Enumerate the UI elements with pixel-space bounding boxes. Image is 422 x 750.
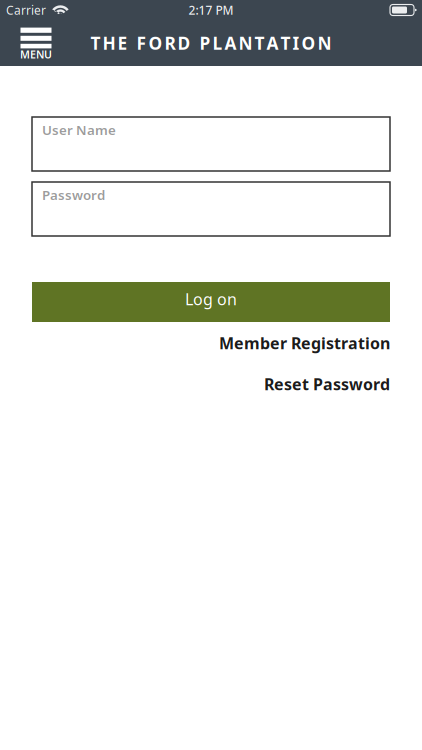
button[interactable]: Log on bbox=[32, 282, 390, 322]
staticText: Password bbox=[42, 186, 105, 204]
staticText: Member Registration bbox=[219, 332, 390, 354]
button[interactable]: Menu bbox=[14, 20, 58, 66]
staticText: User Name bbox=[42, 121, 116, 139]
staticText: 2:17 PM bbox=[188, 2, 233, 18]
staticText: Reset Password bbox=[264, 373, 390, 395]
button[interactable]: Reset Password bbox=[32, 369, 390, 399]
staticText: T H E F O R D P L A N T A T I O N bbox=[90, 31, 331, 54]
staticText: Carrier bbox=[6, 2, 46, 18]
staticText: MENU bbox=[20, 47, 52, 62]
staticText: Log on bbox=[185, 288, 237, 310]
button[interactable]: Member Registration bbox=[32, 328, 390, 358]
